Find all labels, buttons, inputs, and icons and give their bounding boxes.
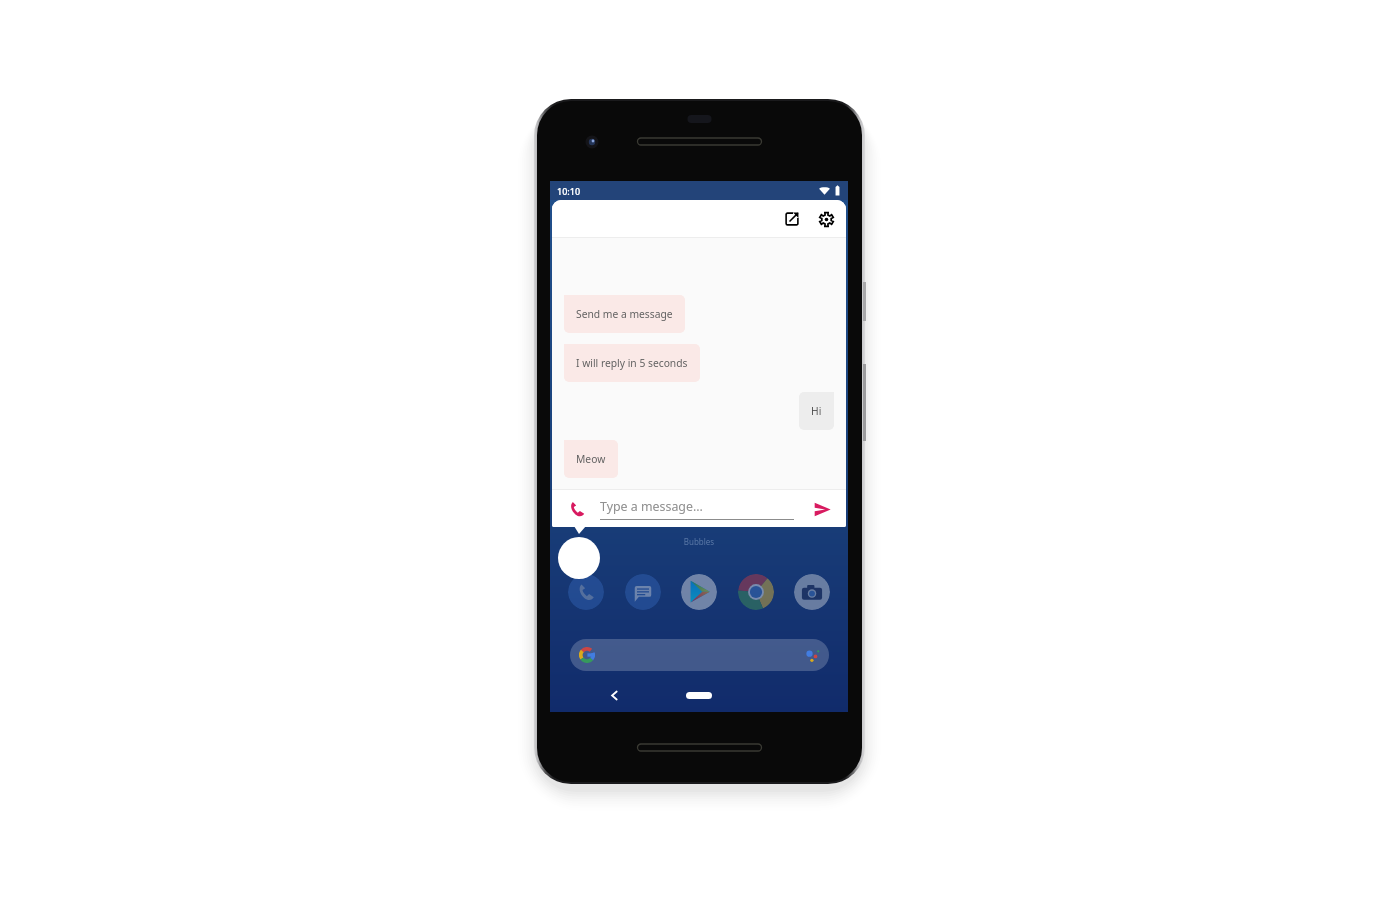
button[interactable]: Meow bbox=[564, 440, 618, 478]
button[interactable]: Send me a message bbox=[564, 295, 685, 333]
button[interactable]: I will reply in 5 seconds bbox=[564, 344, 700, 382]
button[interactable]: Search bbox=[570, 639, 829, 671]
button[interactable]: Call bbox=[566, 498, 588, 520]
button[interactable]: Home bbox=[686, 692, 712, 699]
staticText: I will reply in 5 seconds bbox=[576, 356, 688, 370]
button[interactable]: Camera bbox=[794, 574, 830, 610]
button[interactable]: Play Store bbox=[681, 574, 717, 610]
staticText: 10:10 bbox=[557, 185, 581, 197]
staticText: Hi bbox=[811, 404, 822, 418]
staticText: Bubbles bbox=[550, 536, 848, 547]
button[interactable]: Back bbox=[605, 686, 623, 704]
button[interactable]: Open in new window bbox=[778, 205, 806, 233]
button[interactable]: Chat bubble bbox=[558, 537, 600, 579]
staticText: Send me a message bbox=[576, 307, 673, 321]
button[interactable]: Settings bbox=[812, 205, 840, 233]
staticText: Meow bbox=[576, 452, 606, 466]
staticText: Type a message... bbox=[600, 498, 703, 515]
button[interactable]: Hi bbox=[799, 392, 834, 430]
button[interactable]: Send bbox=[811, 498, 833, 520]
button[interactable]: Messages bbox=[625, 574, 661, 610]
button[interactable]: Phone bbox=[568, 574, 604, 610]
button[interactable]: Chrome bbox=[738, 574, 774, 610]
